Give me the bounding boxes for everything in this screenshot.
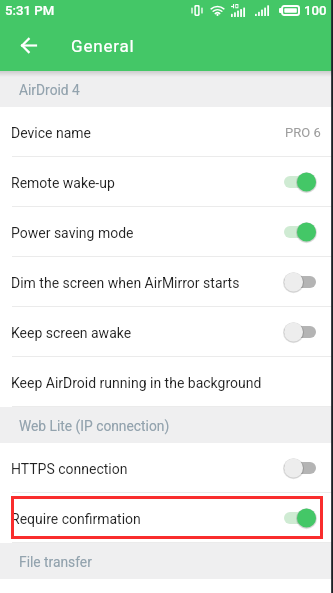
staticText: Web Lite (IP connection)	[19, 418, 170, 434]
button[interactable]: Keep AirDroid running in the background	[0, 357, 333, 407]
button[interactable]: Remote wake-up	[0, 157, 333, 207]
button[interactable]: Dim the screen when AirMirror starts	[0, 257, 333, 307]
button[interactable]: Remote wake-up, on	[284, 172, 316, 192]
staticText: PRO 6	[285, 125, 321, 140]
staticText: Keep screen awake	[11, 325, 132, 341]
button[interactable]: HTTPS connection	[0, 443, 333, 493]
staticText: General	[71, 36, 135, 56]
button[interactable]: Keep screen awake, off	[284, 322, 316, 342]
button[interactable]: Require confirmation	[0, 493, 333, 543]
staticText: Device name	[11, 125, 91, 141]
button[interactable]: Require confirmation, on	[284, 508, 316, 528]
staticText: Remote wake-up	[11, 175, 115, 191]
staticText: 100	[304, 3, 327, 18]
staticText: 5:31 PM	[5, 3, 55, 18]
staticText: AirDroid 4	[19, 82, 80, 98]
button[interactable]: Back	[0, 22, 56, 69]
staticText: File transfer	[19, 554, 92, 570]
button[interactable]: Device name	[0, 107, 333, 157]
button[interactable]: Dim the screen when AirMirror starts, of…	[284, 272, 316, 292]
staticText: Dim the screen when AirMirror starts	[11, 275, 240, 291]
button[interactable]: Power saving mode	[0, 207, 333, 257]
staticText: Keep AirDroid running in the background	[11, 375, 262, 391]
button[interactable]: Keep screen awake	[0, 307, 333, 357]
button[interactable]: HTTPS connection, off	[284, 458, 316, 478]
button[interactable]: Power saving mode, on	[284, 222, 316, 242]
staticText: Require confirmation	[11, 511, 141, 527]
staticText: Power saving mode	[11, 225, 134, 241]
staticText: HTTPS connection	[11, 461, 128, 477]
